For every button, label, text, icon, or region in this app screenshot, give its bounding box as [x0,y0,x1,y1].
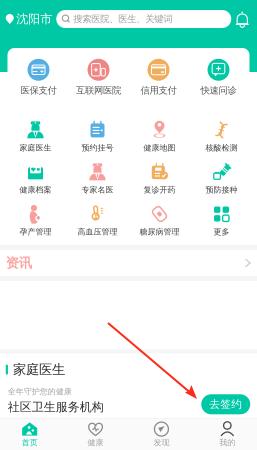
staticText: 孕产管理 [19,227,51,237]
staticText: 信用支付 [140,85,176,96]
button[interactable]: 家庭医生 [0,353,257,418]
button[interactable]: 健康地图 [128,119,190,161]
staticText: 健康 [88,438,104,447]
button[interactable]: 高血压管理 [66,203,128,245]
staticText: 发现 [153,438,169,447]
staticText: 首页 [22,438,38,447]
staticText: 核酸检测 [205,143,237,153]
button[interactable]: 首页 [0,419,63,450]
staticText: 全年守护您的健康 [8,387,72,397]
staticText: 去签约 [209,398,242,411]
button[interactable]: 互联网医院 [68,48,128,107]
button[interactable]: 更多 [190,203,252,245]
button[interactable]: 信用支付 [128,48,188,107]
button[interactable]: 发现 [128,419,194,450]
button[interactable]: 健康档案 [4,161,66,203]
staticText: 社区卫生服务机构 [8,400,104,414]
button[interactable]: Notifications [231,8,253,30]
button[interactable]: 家庭医生 [4,119,66,161]
button[interactable]: 糖尿病管理 [128,203,190,245]
staticText: 搜索医院、医生、关键词 [73,13,172,25]
button[interactable]: 资讯 [0,250,257,276]
button[interactable]: 医保支付 [8,48,68,107]
staticText: 更多 [213,227,229,237]
staticText: 家庭医生 [13,361,65,378]
staticText: 健康档案 [19,185,51,195]
button[interactable]: 专家名医 [66,161,128,203]
button[interactable]: 预防接种 [190,161,252,203]
staticText: 健康地图 [143,143,175,153]
button[interactable]: 预约挂号 [66,119,128,161]
staticText: 预防接种 [205,185,237,195]
button[interactable]: 健康 [63,419,128,450]
button[interactable]: 搜索医院、医生、关键词 [56,10,231,28]
button[interactable]: 沈阳市 [0,5,56,33]
button[interactable]: 复诊开药 [128,161,190,203]
staticText: 医保支付 [20,85,56,96]
staticText: 复诊开药 [143,185,175,195]
button[interactable]: 核酸检测 [190,119,252,161]
staticText: 我的 [219,438,235,447]
staticText: 快速问诊 [200,85,236,96]
staticText: 互联网医院 [76,85,121,96]
staticText: 糖尿病管理 [139,227,179,237]
staticText: 高血压管理 [77,227,117,237]
button[interactable]: 孕产管理 [4,203,66,245]
button[interactable]: 我的 [194,419,257,450]
staticText: 家庭医生 [19,143,51,153]
staticText: 预约挂号 [81,143,113,153]
staticText: 沈阳市 [16,12,52,26]
button[interactable]: 快速问诊 [188,48,248,107]
staticText: 资讯 [6,255,32,271]
staticText: 专家名医 [81,185,113,195]
